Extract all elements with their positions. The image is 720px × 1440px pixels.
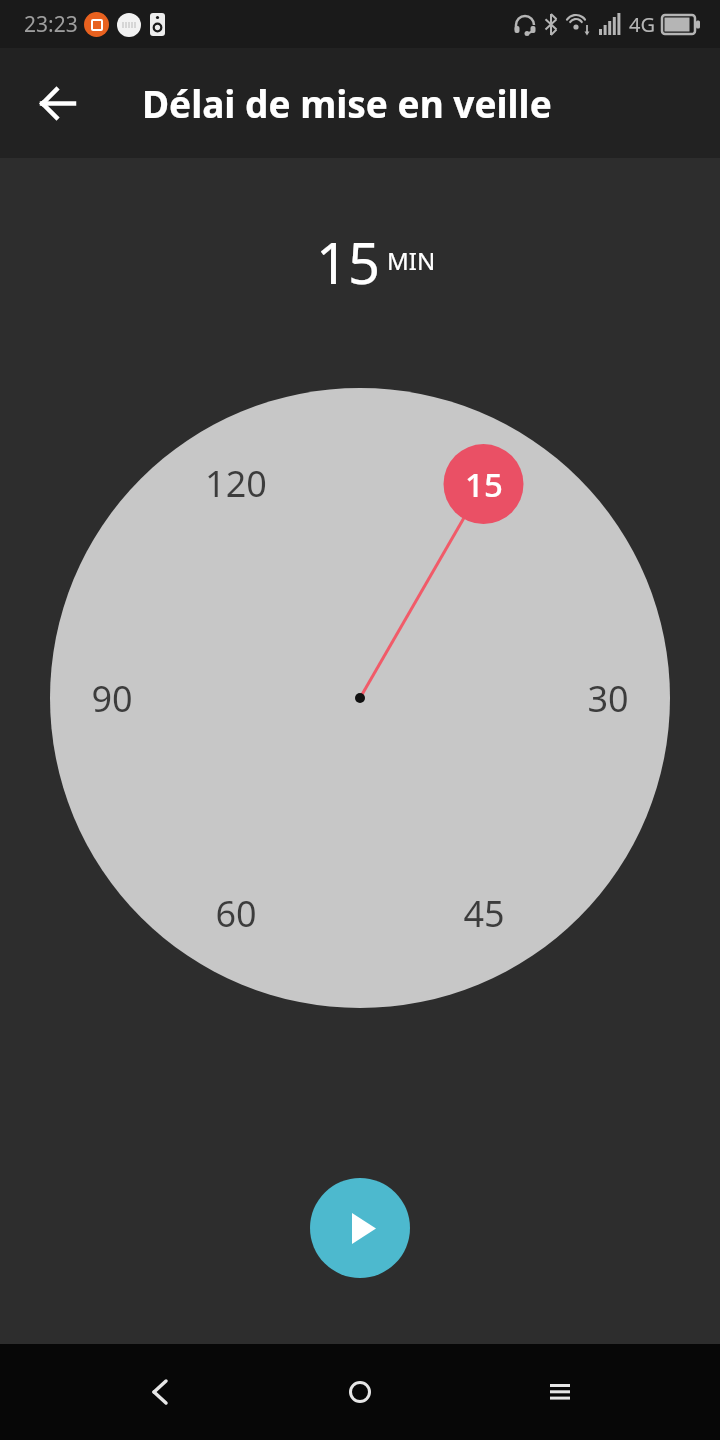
staticText: 15 (465, 462, 503, 507)
staticText: 23:23 (24, 10, 78, 39)
staticText: 120 (205, 459, 267, 508)
staticText: 45 (463, 889, 505, 938)
staticText: 15 (316, 224, 381, 300)
button[interactable] (0, 48, 114, 158)
button[interactable] (512, 1344, 608, 1440)
staticText: Délai de mise en veille (142, 78, 552, 128)
staticText: 90 (91, 674, 133, 723)
staticText: 4G (629, 11, 655, 38)
button[interactable] (112, 1344, 208, 1440)
staticText: 30 (587, 674, 629, 723)
staticText: 60 (215, 889, 257, 938)
staticText: MIN (387, 244, 436, 277)
button[interactable] (312, 1344, 408, 1440)
button[interactable] (310, 1178, 410, 1278)
